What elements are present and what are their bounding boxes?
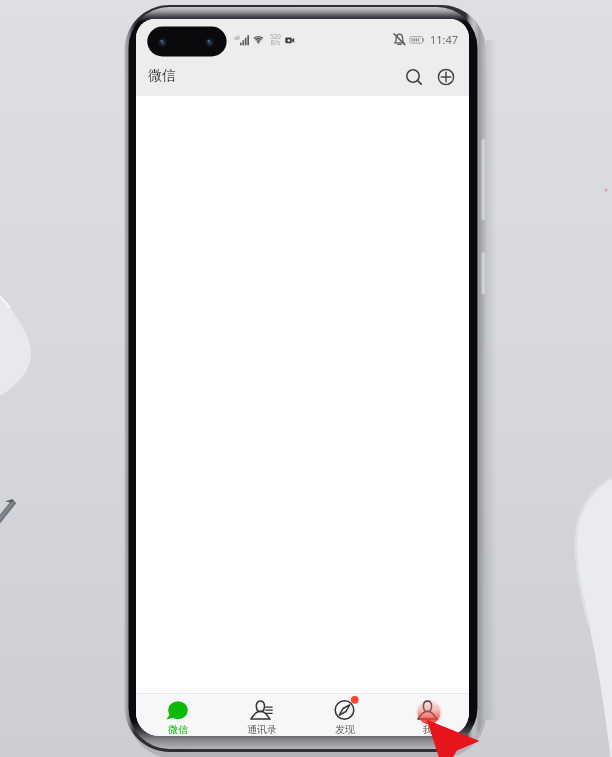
button[interactable]: 发现 bbox=[303, 694, 386, 736]
button[interactable]: Search bbox=[398, 61, 428, 91]
button[interactable]: 通讯录 bbox=[220, 694, 303, 736]
staticText: 520 B/s bbox=[270, 32, 281, 47]
button[interactable]: 我 bbox=[386, 694, 469, 736]
staticText: 微信 bbox=[148, 67, 176, 85]
staticText: 发现 bbox=[335, 724, 355, 736]
staticText: 微信 bbox=[168, 724, 188, 736]
staticText: 我 bbox=[423, 724, 433, 736]
button[interactable]: Add bbox=[431, 62, 461, 92]
button[interactable]: 微信 bbox=[136, 694, 220, 736]
staticText: 11:47 bbox=[430, 32, 459, 47]
staticText: 通讯录 bbox=[247, 724, 277, 736]
